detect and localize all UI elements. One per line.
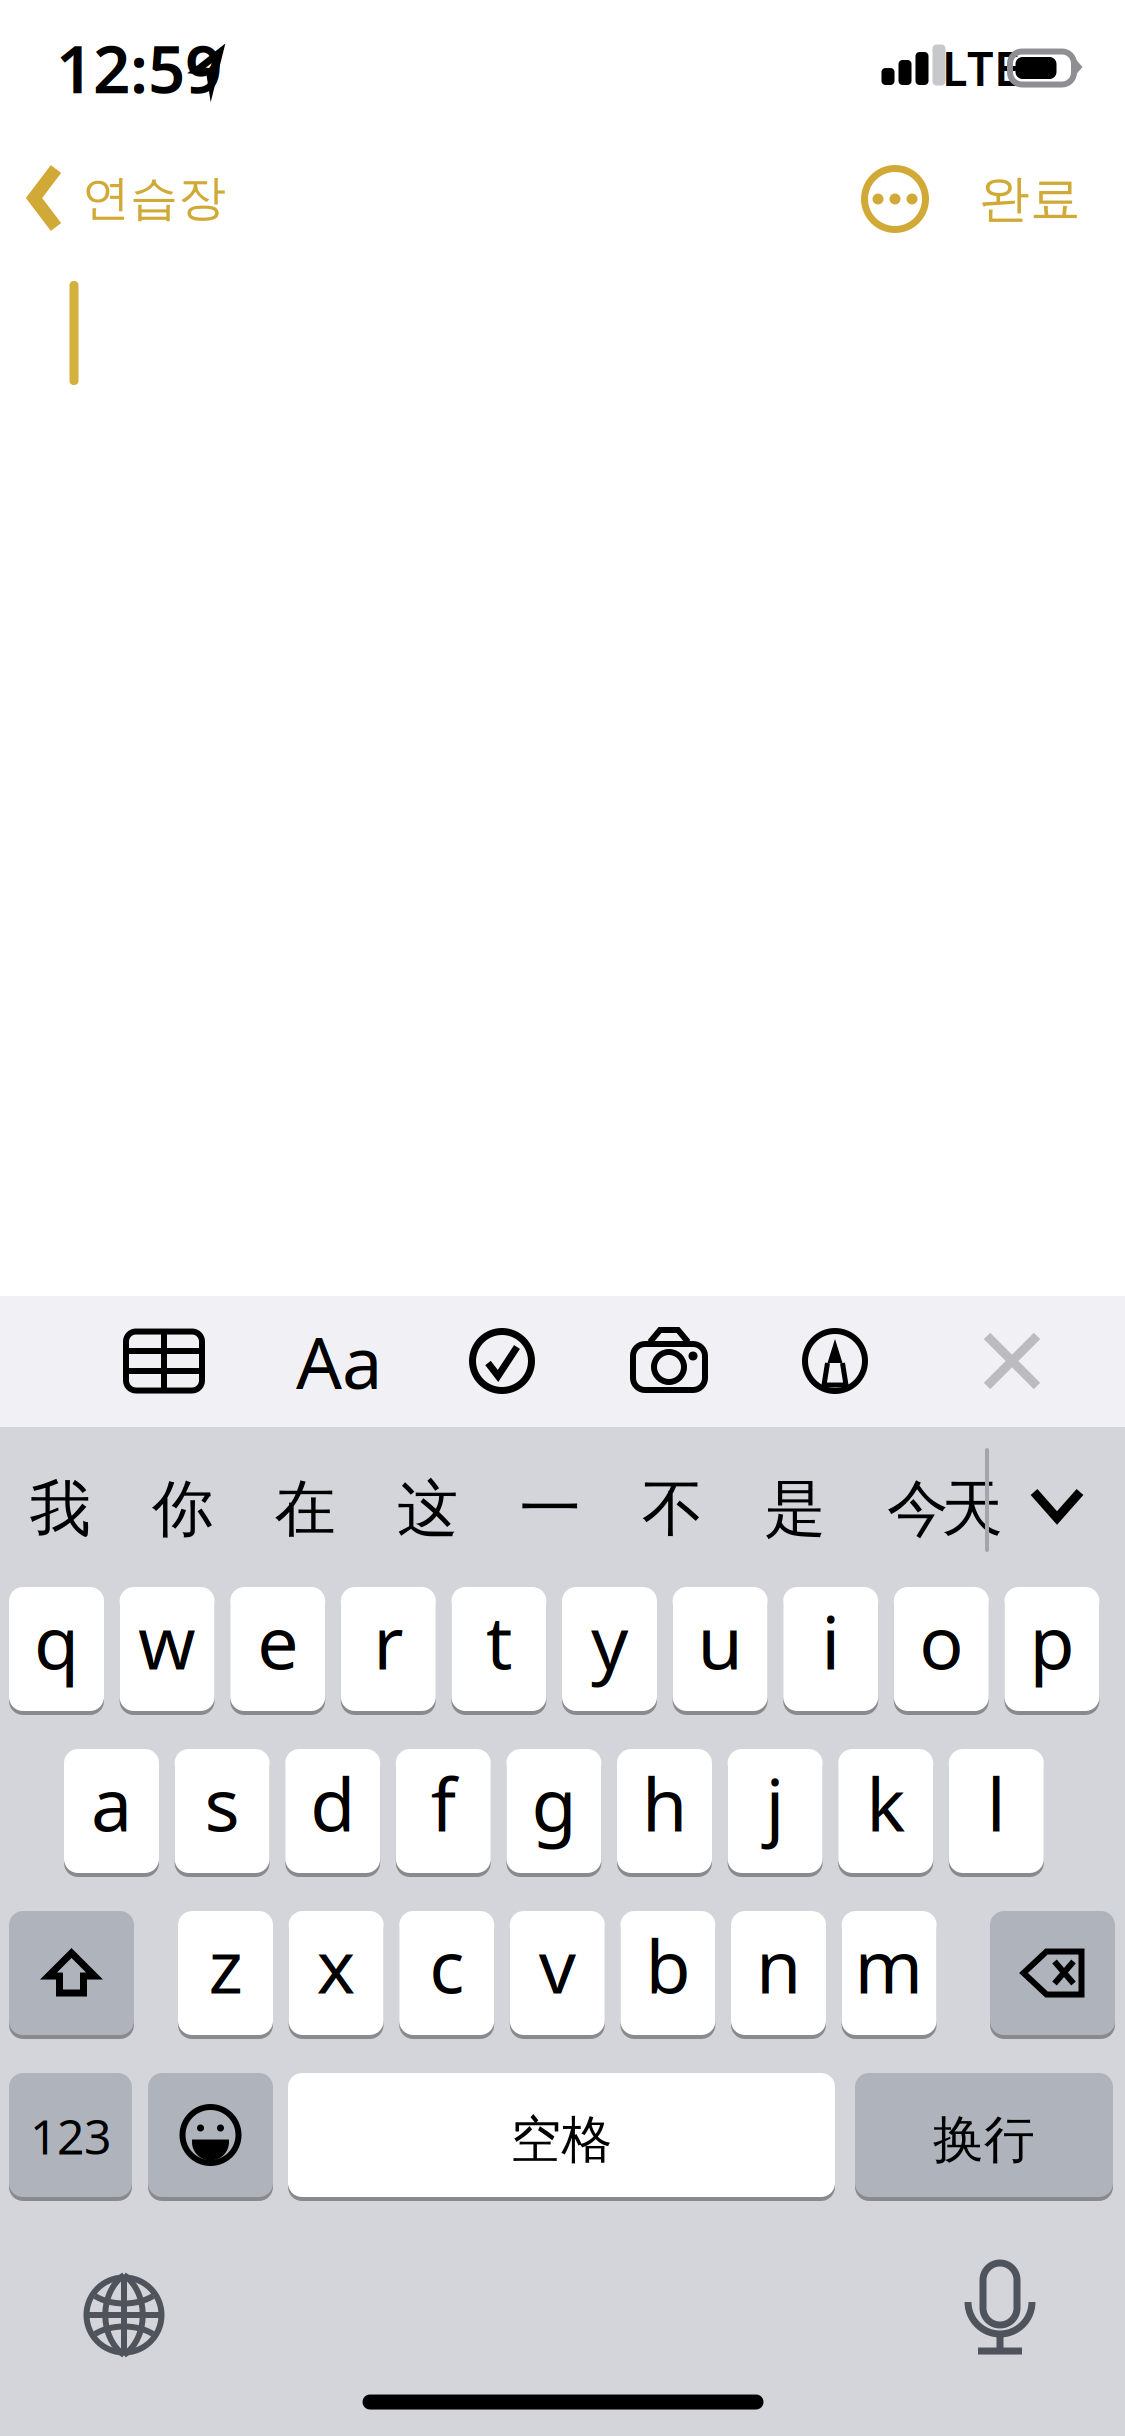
button[interactable]: 你 [126, 1434, 238, 1584]
staticText: b [645, 1916, 690, 2014]
button[interactable]: Delete [990, 1909, 1115, 2037]
button[interactable]: 不 [616, 1434, 728, 1584]
staticText: 123 [30, 2104, 111, 2168]
staticText: z [208, 1916, 242, 2014]
staticText: x [317, 1916, 356, 2014]
staticText: 一 [519, 1471, 580, 1547]
staticText: k [866, 1754, 905, 1852]
button[interactable]: Show more candidates [1018, 1445, 1096, 1565]
button[interactable]: 天 [937, 1434, 1007, 1584]
button[interactable]: Markup [785, 1311, 885, 1411]
staticText: h [642, 1754, 687, 1852]
button[interactable]: 空格 [288, 2071, 835, 2199]
staticText: c [429, 1916, 464, 2014]
button[interactable]: 在 [249, 1434, 361, 1584]
staticText: p [1029, 1592, 1074, 1690]
button[interactable]: Table [114, 1311, 214, 1411]
staticText: 天 [941, 1471, 1002, 1547]
staticText: 今 [887, 1471, 948, 1547]
staticText: 你 [152, 1471, 213, 1547]
button[interactable]: Format [279, 1311, 399, 1411]
button[interactable]: Close [966, 1307, 1058, 1415]
button[interactable]: Camera [619, 1311, 719, 1411]
staticText: 在 [274, 1471, 335, 1547]
button[interactable]: 我 [4, 1434, 116, 1584]
staticText: a [91, 1754, 132, 1852]
staticText: o [919, 1592, 963, 1690]
staticText: 空格 [510, 2109, 612, 2171]
staticText: l [987, 1754, 1006, 1852]
staticText: e [257, 1592, 298, 1690]
button[interactable]: Shift [9, 1909, 134, 2037]
staticText: i [821, 1592, 840, 1690]
staticText: s [205, 1754, 240, 1852]
staticText: r [373, 1592, 403, 1690]
staticText: 我 [29, 1471, 90, 1547]
button[interactable]: 换行 [855, 2071, 1113, 2199]
staticText: y [591, 1592, 628, 1690]
staticText: u [698, 1592, 743, 1690]
staticText: LTE [942, 37, 1020, 99]
button[interactable]: Checklist [452, 1311, 552, 1411]
button[interactable]: 연습장 [0, 133, 400, 263]
staticText: 不 [642, 1471, 703, 1547]
button[interactable]: Dictation [945, 2257, 1055, 2367]
staticText: w [138, 1592, 196, 1690]
staticText: g [531, 1754, 576, 1852]
staticText: 연습장 [82, 168, 226, 227]
button[interactable]: More [845, 149, 945, 249]
button[interactable]: 这 [371, 1434, 483, 1584]
staticText: 是 [764, 1471, 825, 1547]
staticText: f [431, 1754, 456, 1852]
button[interactable]: 123 [9, 2071, 132, 2199]
button[interactable]: Emoji [148, 2071, 273, 2199]
staticText: q [34, 1592, 79, 1690]
staticText: d [310, 1754, 355, 1852]
button[interactable]: 一 [494, 1434, 606, 1584]
staticText: 완료 [979, 168, 1081, 230]
staticText: 12:59 [56, 25, 222, 111]
staticText: j [766, 1754, 785, 1852]
staticText: Aa [296, 1313, 382, 1409]
button[interactable]: 是 [739, 1434, 851, 1584]
staticText: 换行 [933, 2109, 1035, 2171]
staticText: 这 [397, 1471, 458, 1547]
staticText: m [855, 1916, 924, 2014]
staticText: n [756, 1916, 801, 2014]
button[interactable]: Switch keyboard [69, 2260, 179, 2370]
staticText: t [486, 1592, 512, 1690]
staticText: v [539, 1916, 576, 2014]
button[interactable]: 완료 [935, 139, 1125, 259]
button[interactable]: 今 [861, 1434, 973, 1584]
